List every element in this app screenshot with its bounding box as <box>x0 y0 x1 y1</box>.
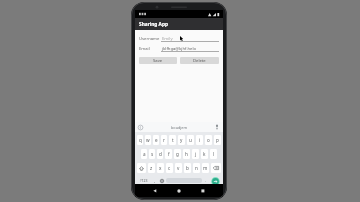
button[interactable]: h <box>183 149 190 159</box>
staticText: Sharing App <box>139 21 168 28</box>
staticText: Save <box>153 58 163 64</box>
staticText: k <box>203 151 206 157</box>
button[interactable]: Delete <box>180 57 219 64</box>
staticText: q <box>139 137 142 143</box>
button[interactable]: r <box>161 135 167 145</box>
button[interactable]: ?123 <box>136 177 151 184</box>
button[interactable]: w <box>145 135 151 145</box>
staticText: jklfhga@kjhf.helo <box>162 46 197 52</box>
staticText: c <box>168 165 171 171</box>
staticText: m <box>203 165 208 171</box>
button[interactable]: k <box>201 149 208 159</box>
staticText: w <box>146 137 150 143</box>
staticText: e <box>155 137 158 143</box>
staticText: Email <box>139 46 161 52</box>
button[interactable] <box>209 177 222 184</box>
button[interactable]: jklfhga@kjhf.helo <box>161 45 219 52</box>
button[interactable]: . <box>202 177 209 184</box>
button[interactable]: e <box>153 135 159 145</box>
staticText: boudjem <box>171 125 187 130</box>
staticText: d <box>159 151 162 157</box>
staticText: x <box>159 165 162 171</box>
button[interactable]: Save <box>139 57 177 64</box>
button[interactable]: x <box>157 163 164 173</box>
staticText: . <box>205 178 207 184</box>
button[interactable]: m <box>202 163 209 173</box>
staticText: p <box>216 137 219 143</box>
button[interactable] <box>151 187 159 195</box>
button[interactable] <box>137 163 146 173</box>
button[interactable]: f <box>165 149 172 159</box>
button[interactable] <box>158 177 166 184</box>
staticText: h <box>185 151 188 157</box>
button[interactable] <box>211 163 221 173</box>
staticText: b <box>186 165 189 171</box>
staticText: y <box>180 137 183 143</box>
button[interactable]: , <box>151 177 158 184</box>
button[interactable]: c <box>166 163 173 173</box>
staticText: Username <box>139 36 161 42</box>
staticText: o <box>207 137 210 143</box>
button[interactable]: a <box>141 149 147 159</box>
button[interactable]: s <box>149 149 155 159</box>
staticText: a <box>143 151 146 157</box>
button[interactable]: p <box>214 135 221 145</box>
staticText: j <box>195 151 197 157</box>
button[interactable]: o <box>205 135 212 145</box>
button[interactable]: n <box>193 163 200 173</box>
button[interactable]: y <box>178 135 185 145</box>
staticText: i <box>199 137 201 143</box>
staticText: l <box>213 151 215 157</box>
button[interactable]: Emily <box>161 35 219 42</box>
staticText: Emily <box>162 36 173 42</box>
button[interactable]: j <box>192 149 199 159</box>
staticText: t <box>172 137 174 143</box>
staticText: z <box>150 165 153 171</box>
button[interactable]: l <box>210 149 217 159</box>
staticText: g <box>176 151 179 157</box>
button[interactable]: d <box>157 149 163 159</box>
button[interactable]: v <box>175 163 182 173</box>
staticText: ?123 <box>140 178 148 183</box>
staticText: n <box>195 165 198 171</box>
staticText: , <box>154 178 156 184</box>
staticText: u <box>189 137 192 143</box>
staticText: f <box>168 151 170 157</box>
button[interactable] <box>199 187 207 195</box>
button[interactable]: t <box>169 135 176 145</box>
button[interactable]: z <box>148 163 155 173</box>
button[interactable]: i <box>196 135 203 145</box>
button[interactable]: g <box>174 149 181 159</box>
button[interactable]: q <box>137 135 143 145</box>
button[interactable] <box>175 187 183 195</box>
staticText: r <box>163 137 165 143</box>
button[interactable]: u <box>187 135 194 145</box>
button[interactable]: b <box>184 163 191 173</box>
staticText: s <box>151 151 154 157</box>
staticText: v <box>177 165 180 171</box>
staticText: Delete <box>193 58 206 64</box>
